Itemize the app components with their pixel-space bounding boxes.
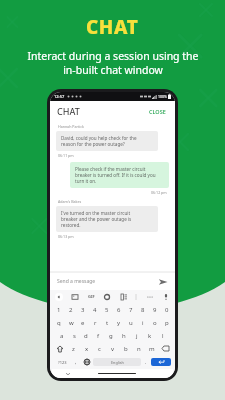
button[interactable]: 7 — [125, 303, 137, 316]
button[interactable]: tl — [120, 293, 128, 301]
staticText: 8 — [141, 306, 145, 314]
button[interactable]: dots — [146, 293, 154, 301]
button[interactable]: 4 — [89, 303, 101, 316]
button[interactable]: q — [52, 316, 65, 329]
button[interactable]: img — [71, 293, 79, 301]
staticText: u — [129, 319, 133, 327]
button[interactable]: Send a message — [50, 273, 175, 290]
button[interactable]: c — [93, 342, 106, 355]
staticText: h — [122, 332, 126, 340]
button[interactable]: CLOSE — [147, 106, 168, 117]
staticText: e — [81, 319, 85, 327]
staticText: v — [111, 345, 115, 353]
staticText: 1 — [57, 306, 61, 314]
button[interactable]: o — [149, 316, 161, 329]
button[interactable]: p — [161, 316, 173, 329]
staticText: CHAT — [57, 105, 80, 117]
staticText: s — [73, 332, 76, 340]
button[interactable]: k — [143, 329, 156, 342]
button[interactable]: v — [106, 342, 119, 355]
button[interactable]: Shift — [52, 342, 67, 355]
staticText: 06:13 pm — [58, 234, 74, 239]
button[interactable]: w — [65, 316, 77, 329]
button[interactable]: ?123 — [54, 355, 70, 369]
staticText: 5 — [105, 306, 109, 314]
staticText: I've turned on the master circuit breake… — [61, 210, 132, 228]
button[interactable]: Emoji — [70, 355, 81, 369]
button[interactable]: 2 — [65, 303, 77, 316]
button[interactable]: l — [156, 329, 169, 342]
button[interactable]: h — [117, 329, 130, 342]
staticText: 100% — [158, 94, 167, 99]
button[interactable]: gear — [103, 293, 111, 301]
button[interactable]: s — [68, 329, 80, 342]
button[interactable]: u — [125, 316, 137, 329]
button[interactable]: i — [137, 316, 149, 329]
button[interactable]: 8 — [137, 303, 149, 316]
button[interactable]: Send — [158, 277, 168, 287]
button[interactable]: Backspace — [158, 342, 173, 355]
staticText: , — [75, 359, 77, 366]
button[interactable]: 9 — [149, 303, 161, 316]
button[interactable]: mic — [162, 293, 170, 301]
button[interactable]: GIF — [88, 294, 95, 299]
button[interactable]: 0 — [161, 303, 173, 316]
button[interactable]: t — [101, 316, 113, 329]
button[interactable]: g — [104, 329, 117, 342]
staticText: o — [153, 319, 157, 327]
staticText: q — [57, 319, 61, 327]
staticText: z — [72, 345, 75, 353]
staticText: g — [109, 332, 113, 340]
button[interactable]: m — [145, 342, 158, 355]
button[interactable]: Please check if the master circuit break… — [70, 162, 169, 188]
button[interactable]: f — [92, 329, 104, 342]
staticText: Adam's Bakes — [58, 199, 82, 204]
staticText: x — [85, 345, 89, 353]
staticText: 9 — [153, 306, 157, 314]
button[interactable]: r — [89, 316, 101, 329]
staticText: p — [165, 319, 169, 327]
staticText: 06:11 pm — [58, 153, 74, 158]
button[interactable]: 5 — [101, 303, 113, 316]
staticText: a — [60, 332, 64, 340]
button[interactable]: e — [77, 316, 89, 329]
staticText: m — [149, 345, 155, 353]
button[interactable]: Language — [81, 355, 93, 369]
staticText: c — [98, 345, 101, 353]
staticText: t — [106, 319, 109, 327]
staticText: j — [136, 332, 138, 340]
button[interactable]: 3 — [77, 303, 89, 316]
staticText: . — [145, 359, 147, 366]
staticText: ?123 — [58, 360, 67, 365]
button[interactable]: English — [93, 358, 141, 366]
button[interactable]: David, could you help check for the reas… — [56, 131, 158, 151]
button[interactable]: Enter — [151, 358, 171, 366]
button[interactable]: a — [56, 329, 68, 342]
staticText: k — [148, 332, 152, 340]
staticText: English — [111, 360, 124, 365]
button[interactable]: . — [141, 355, 151, 369]
button[interactable]: I've turned on the master circuit breake… — [56, 206, 158, 232]
staticText: 06:12 pm — [151, 190, 167, 195]
button[interactable]: y — [113, 316, 125, 329]
staticText: i — [142, 319, 144, 327]
button[interactable]: b — [119, 342, 132, 355]
staticText: David, could you help check for the reas… — [61, 135, 137, 147]
button[interactable]: x — [80, 342, 93, 355]
button[interactable]: Back — [55, 293, 63, 301]
button[interactable]: d — [80, 329, 92, 342]
staticText: 0 — [165, 306, 169, 314]
button[interactable]: j — [130, 329, 143, 342]
staticText: 7 — [129, 306, 133, 314]
staticText: f — [97, 332, 100, 340]
button[interactable]: n — [132, 342, 145, 355]
button[interactable]: 1 — [52, 303, 65, 316]
staticText: b — [124, 345, 128, 353]
button[interactable]: 6 — [113, 303, 125, 316]
button[interactable]: z — [67, 342, 80, 355]
staticText: d — [84, 332, 88, 340]
staticText: y — [117, 319, 121, 327]
staticText: CLOSE — [149, 108, 166, 115]
staticText: 3 — [81, 306, 85, 314]
staticText: CHAT — [86, 14, 139, 40]
